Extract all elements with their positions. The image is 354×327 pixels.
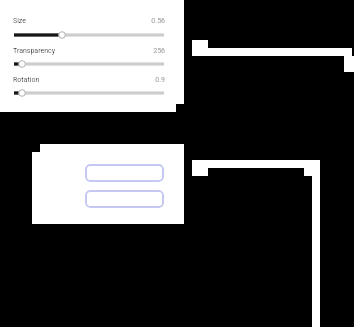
button[interactable]: Rotation slider, 0.9	[8, 86, 170, 100]
staticText: Size	[13, 17, 26, 25]
button[interactable]: Second input field	[85, 190, 164, 208]
button[interactable]: Transparency slider, 256	[8, 57, 170, 71]
button[interactable]: Size slider, 0.56	[8, 28, 170, 42]
staticText: 0.56	[104, 17, 165, 25]
staticText: 0.9	[104, 76, 165, 84]
staticText: 256	[104, 47, 165, 55]
staticText: Transparency	[13, 47, 56, 55]
staticText: Rotation	[13, 76, 40, 84]
button[interactable]: First input field	[85, 164, 164, 182]
